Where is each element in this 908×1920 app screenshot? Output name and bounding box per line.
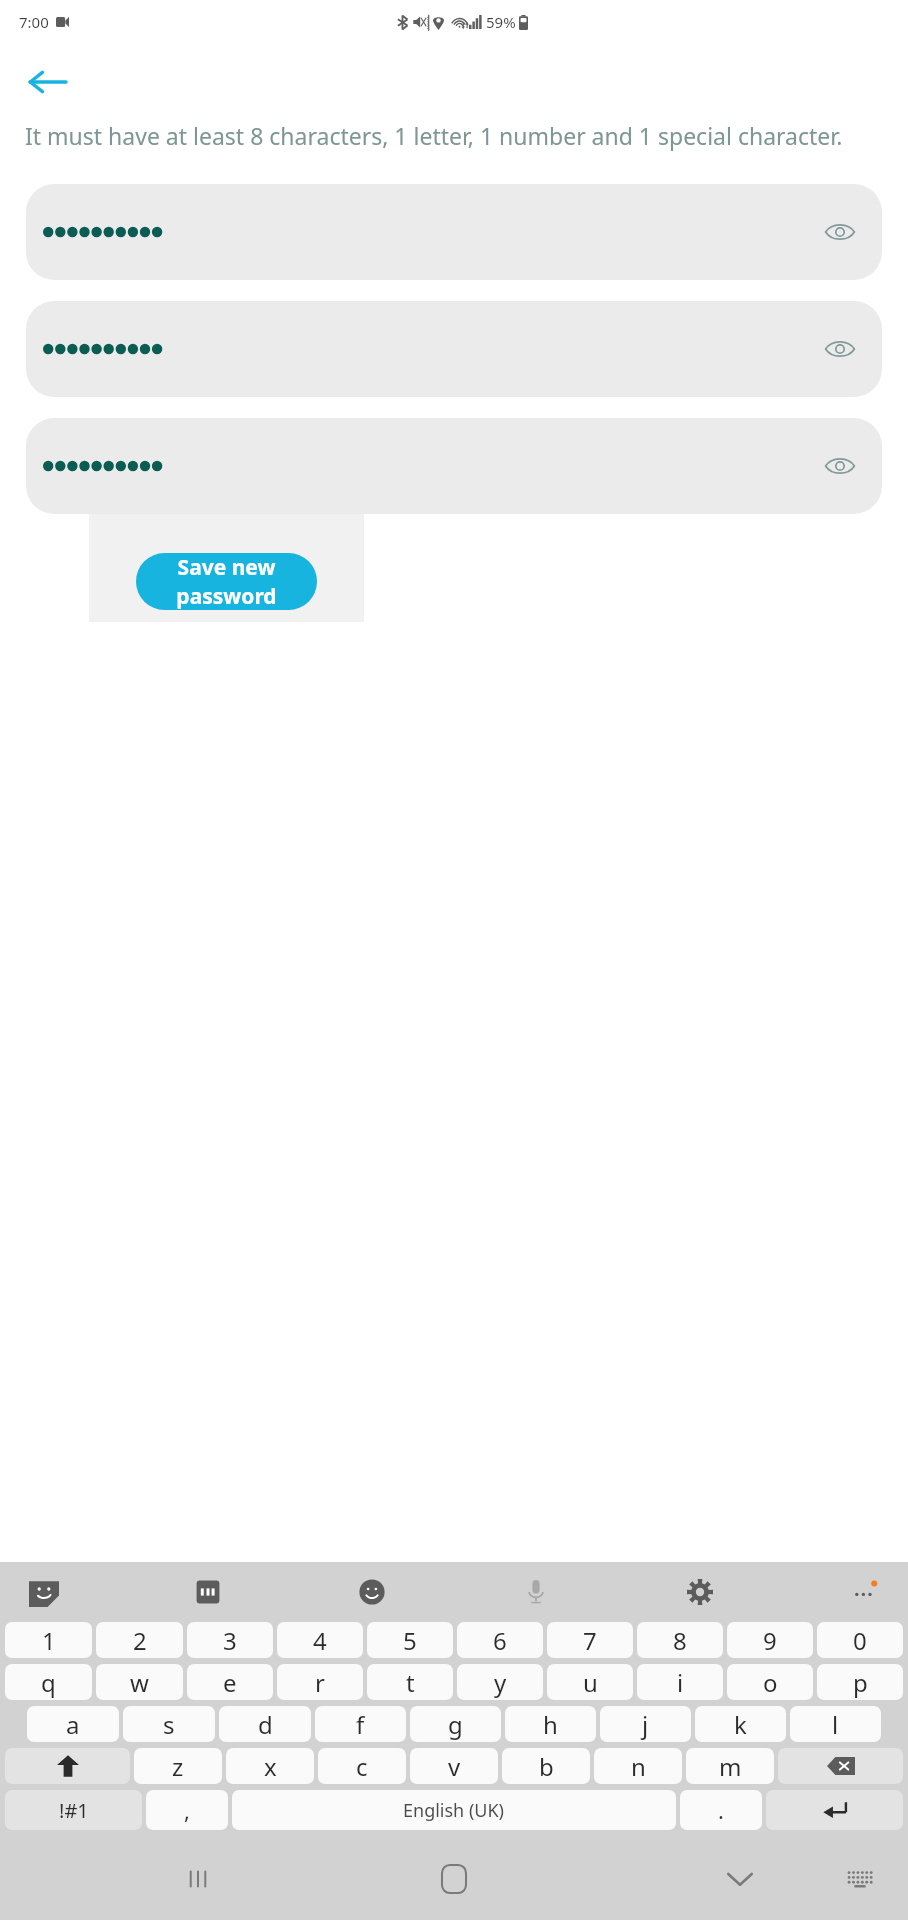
button[interactable]: Recents bbox=[170, 1851, 226, 1907]
button[interactable]: Show password bbox=[812, 321, 868, 377]
staticText: g bbox=[448, 1708, 463, 1741]
button[interactable]: e bbox=[187, 1664, 273, 1700]
button[interactable]: Back bbox=[18, 53, 76, 111]
button[interactable]: i bbox=[637, 1664, 723, 1700]
staticText: 8 bbox=[673, 1624, 687, 1657]
button[interactable]: w bbox=[96, 1664, 183, 1700]
staticText: 9 bbox=[763, 1624, 777, 1657]
staticText: u bbox=[583, 1666, 598, 1699]
button[interactable]: u bbox=[547, 1664, 633, 1700]
staticText: l bbox=[832, 1708, 839, 1741]
button[interactable]: k bbox=[695, 1706, 786, 1742]
staticText: It must have at least 8 characters, 1 le… bbox=[25, 120, 860, 151]
staticText: j bbox=[642, 1708, 649, 1741]
button[interactable]: 5 bbox=[367, 1622, 453, 1658]
staticText: , bbox=[184, 1795, 190, 1825]
button[interactable]: !#1 bbox=[5, 1790, 142, 1830]
staticText: 5 bbox=[403, 1624, 417, 1657]
staticText: d bbox=[258, 1708, 273, 1741]
button[interactable]: Stickers bbox=[22, 1570, 66, 1614]
staticText: a bbox=[66, 1708, 80, 1741]
button[interactable]: Show password bbox=[26, 184, 882, 280]
staticText: !#1 bbox=[59, 1797, 89, 1824]
button[interactable]: r bbox=[277, 1664, 363, 1700]
button[interactable]: Show password bbox=[812, 438, 868, 494]
staticText: English (UK) bbox=[403, 1798, 505, 1823]
button[interactable]: , bbox=[146, 1790, 228, 1830]
button[interactable]: 1 bbox=[5, 1622, 92, 1658]
staticText: s bbox=[163, 1708, 175, 1741]
button[interactable]: 6 bbox=[457, 1622, 543, 1658]
staticText: f bbox=[356, 1708, 365, 1741]
staticText: 4 bbox=[313, 1624, 327, 1657]
button[interactable]: d bbox=[219, 1706, 311, 1742]
button[interactable]: 2 bbox=[96, 1622, 183, 1658]
button[interactable]: Keyboard settings bbox=[678, 1570, 722, 1614]
staticText: 7 bbox=[583, 1624, 597, 1657]
button[interactable]: . bbox=[680, 1790, 762, 1830]
staticText: r bbox=[315, 1666, 325, 1699]
button[interactable]: y bbox=[457, 1664, 543, 1700]
button[interactable]: Home bbox=[426, 1851, 482, 1907]
staticText: k bbox=[734, 1708, 747, 1741]
staticText: 3 bbox=[223, 1624, 237, 1657]
button[interactable]: b bbox=[502, 1748, 590, 1784]
button[interactable]: f bbox=[315, 1706, 406, 1742]
button[interactable]: c bbox=[318, 1748, 406, 1784]
button[interactable]: Save new password bbox=[136, 553, 317, 610]
button[interactable]: p bbox=[817, 1664, 903, 1700]
staticText: y bbox=[494, 1666, 507, 1699]
button[interactable]: English (UK) bbox=[232, 1790, 676, 1830]
button[interactable]: Enter bbox=[766, 1790, 903, 1830]
button[interactable]: 3 bbox=[187, 1622, 273, 1658]
button[interactable]: Show password bbox=[812, 204, 868, 260]
button[interactable]: GIF bbox=[186, 1570, 230, 1614]
staticText: e bbox=[223, 1666, 237, 1699]
button[interactable]: 8 bbox=[637, 1622, 723, 1658]
button[interactable]: t bbox=[367, 1664, 453, 1700]
staticText: 0 bbox=[853, 1624, 867, 1657]
staticText: h bbox=[543, 1708, 558, 1741]
staticText: i bbox=[677, 1666, 684, 1699]
button[interactable]: m bbox=[686, 1748, 774, 1784]
button[interactable]: v bbox=[410, 1748, 498, 1784]
button[interactable]: z bbox=[134, 1748, 222, 1784]
button[interactable]: s bbox=[123, 1706, 215, 1742]
button[interactable]: 9 bbox=[727, 1622, 813, 1658]
button[interactable]: 4 bbox=[277, 1622, 363, 1658]
button[interactable]: h bbox=[505, 1706, 596, 1742]
staticText: c bbox=[356, 1750, 368, 1783]
button[interactable]: Voice input bbox=[514, 1570, 558, 1614]
button[interactable]: Emoji bbox=[350, 1570, 394, 1614]
staticText: 1 bbox=[42, 1624, 56, 1657]
staticText: t bbox=[406, 1666, 415, 1699]
staticText: p bbox=[853, 1666, 868, 1699]
staticText: m bbox=[719, 1750, 742, 1783]
button[interactable]: Shift bbox=[5, 1748, 130, 1784]
staticText: 2 bbox=[133, 1624, 147, 1657]
button[interactable]: Show password bbox=[26, 301, 882, 397]
button[interactable]: l bbox=[790, 1706, 881, 1742]
staticText: Save new password bbox=[136, 553, 317, 610]
button[interactable]: Show password bbox=[26, 418, 882, 514]
button[interactable]: g bbox=[410, 1706, 501, 1742]
staticText: x bbox=[264, 1750, 277, 1783]
button[interactable]: 7 bbox=[547, 1622, 633, 1658]
button[interactable]: Switch keyboard bbox=[834, 1853, 886, 1905]
staticText: o bbox=[763, 1666, 778, 1699]
staticText: 6 bbox=[493, 1624, 507, 1657]
button[interactable]: o bbox=[727, 1664, 813, 1700]
button[interactable]: 0 bbox=[817, 1622, 903, 1658]
staticText: q bbox=[41, 1666, 56, 1699]
button[interactable]: j bbox=[600, 1706, 691, 1742]
button[interactable]: Backspace bbox=[778, 1748, 903, 1784]
button[interactable]: x bbox=[226, 1748, 314, 1784]
button[interactable]: Hide keyboard bbox=[712, 1851, 768, 1907]
staticText: 59% bbox=[486, 12, 516, 32]
button[interactable]: n bbox=[594, 1748, 682, 1784]
button[interactable]: q bbox=[5, 1664, 92, 1700]
staticText: 7:00 bbox=[19, 12, 49, 32]
staticText: b bbox=[539, 1750, 554, 1783]
button[interactable]: More options bbox=[842, 1570, 886, 1614]
button[interactable]: a bbox=[27, 1706, 119, 1742]
